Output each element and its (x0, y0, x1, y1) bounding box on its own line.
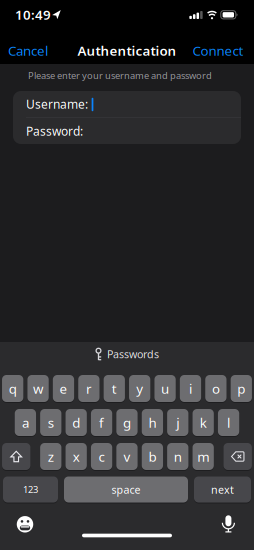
staticText: next (211, 482, 234, 497)
staticText: x (73, 448, 80, 465)
staticText: Username: (26, 96, 88, 112)
staticText: u (161, 380, 169, 397)
staticText: n (174, 448, 182, 465)
staticText: d (72, 414, 80, 431)
button[interactable]: Passwords (95, 346, 159, 362)
staticText: Cancel (8, 42, 48, 59)
staticText: q (9, 380, 17, 397)
staticText: s (48, 414, 54, 431)
staticText: r (86, 380, 92, 397)
staticText: z (48, 448, 54, 465)
button[interactable]: Dictate (216, 512, 240, 536)
staticText: f (99, 414, 104, 431)
staticText: i (189, 380, 192, 397)
button[interactable]: l (218, 409, 239, 436)
staticText: g (123, 414, 131, 431)
button[interactable]: s (40, 409, 61, 436)
button[interactable]: j (167, 409, 188, 436)
button[interactable]: z (40, 443, 61, 470)
staticText: 10:49 (15, 6, 51, 23)
button[interactable]: i (180, 375, 201, 402)
button[interactable]: f (91, 409, 112, 436)
button[interactable]: n (167, 443, 188, 470)
button[interactable]: Cancel (0, 40, 56, 60)
button[interactable]: k (192, 409, 214, 436)
staticText: p (237, 380, 245, 397)
button[interactable]: g (116, 409, 138, 436)
staticText: h (148, 414, 156, 431)
button[interactable]: y (129, 375, 150, 402)
staticText: w (33, 380, 43, 397)
staticText: v (123, 448, 130, 465)
staticText: 123 (23, 483, 38, 496)
button[interactable]: x (65, 443, 87, 470)
button[interactable]: w (27, 375, 49, 402)
button[interactable]: Connect (186, 40, 250, 60)
staticText: t (112, 380, 117, 397)
staticText: j (176, 414, 179, 431)
staticText: b (148, 448, 156, 465)
button[interactable]: Password: (26, 118, 241, 144)
button[interactable]: space (64, 476, 188, 502)
button[interactable]: d (65, 409, 87, 436)
staticText: k (200, 414, 207, 431)
button[interactable]: a (15, 409, 36, 436)
staticText: a (22, 414, 29, 431)
button[interactable]: Shift (2, 443, 30, 470)
staticText: l (227, 414, 230, 431)
staticText: e (59, 380, 67, 397)
button[interactable]: v (116, 443, 138, 470)
button[interactable]: h (142, 409, 163, 436)
staticText: m (197, 448, 209, 465)
button[interactable]: Emoji (13, 512, 37, 536)
button[interactable]: Delete (223, 443, 252, 470)
staticText: Passwords (107, 347, 159, 361)
button[interactable]: q (2, 375, 23, 402)
staticText: space (111, 482, 140, 497)
button[interactable]: b (142, 443, 163, 470)
button[interactable]: t (104, 375, 125, 402)
button[interactable]: Username: (26, 91, 241, 117)
button[interactable]: 123 (3, 476, 58, 502)
button[interactable]: next (194, 476, 251, 502)
staticText: Authentication (77, 42, 176, 59)
button[interactable]: e (53, 375, 74, 402)
staticText: Connect (192, 42, 243, 59)
button[interactable]: u (154, 375, 176, 402)
button[interactable]: o (205, 375, 226, 402)
staticText: y (136, 380, 143, 397)
staticText: Password: (26, 123, 83, 139)
button[interactable]: c (91, 443, 112, 470)
button[interactable]: p (231, 375, 252, 402)
staticText: Please enter your username and password (28, 69, 212, 82)
staticText: c (99, 448, 105, 465)
staticText: o (212, 380, 220, 397)
button[interactable]: r (78, 375, 99, 402)
button[interactable]: m (192, 443, 214, 470)
